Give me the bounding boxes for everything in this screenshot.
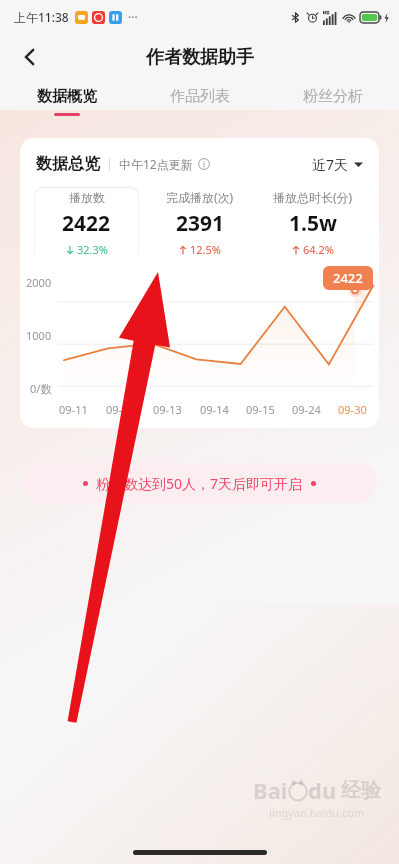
staticText: 09-11 xyxy=(59,402,88,417)
staticText: 64.2% xyxy=(303,242,334,257)
staticText: 粉丝分析 xyxy=(303,87,363,106)
button[interactable]: 近7天 xyxy=(312,155,363,174)
staticText: 2391 xyxy=(176,209,225,238)
staticText: 09-15 xyxy=(246,402,275,417)
staticText: 作品列表 xyxy=(170,87,230,106)
button[interactable]: 播放数 xyxy=(34,186,139,260)
staticText: 2422 xyxy=(62,209,111,238)
staticText: ··· xyxy=(128,9,138,25)
staticText: 32.3% xyxy=(77,242,108,257)
staticText: 上午11:38 xyxy=(14,9,69,25)
staticText: 数据总览 xyxy=(36,154,100,174)
staticText: 数据概览 xyxy=(37,87,97,106)
staticText: 2000 xyxy=(26,275,52,290)
staticText: 2422 xyxy=(333,269,363,287)
staticText: 0/数 xyxy=(30,381,52,396)
staticText: 09-14 xyxy=(200,402,229,417)
button[interactable]: 说明 xyxy=(198,158,210,170)
staticText: 近7天 xyxy=(312,155,349,174)
staticText: 播放数 xyxy=(69,190,105,205)
staticText: 09-13 xyxy=(153,402,182,417)
button[interactable]: 粉丝数达到50人，7天后即可开启 xyxy=(22,463,377,503)
staticText: 1000 xyxy=(26,328,52,343)
staticText: 中午12点更新 xyxy=(119,156,193,172)
staticText: 09-30 xyxy=(338,402,367,417)
staticText: du xyxy=(308,775,337,805)
button[interactable]: 返回 xyxy=(8,35,52,79)
button[interactable]: 完成播放(次) xyxy=(147,186,252,260)
staticText: 12.5% xyxy=(190,242,221,257)
button[interactable]: 粉丝分析 xyxy=(266,80,399,122)
staticText: 粉丝数达到50人，7天后即可开启 xyxy=(96,474,303,493)
staticText: Bai xyxy=(253,775,288,805)
button[interactable]: 作品列表 xyxy=(133,80,266,122)
staticText: 完成播放(次) xyxy=(166,189,234,205)
staticText: jingyan.baidu.com xyxy=(269,805,365,820)
button[interactable]: 数据概览 xyxy=(0,80,133,122)
staticText: 作者数据助手 xyxy=(146,46,254,69)
staticText: 09-24 xyxy=(292,402,321,417)
staticText: 09-12 xyxy=(106,402,135,417)
staticText: 1.5w xyxy=(289,209,337,238)
staticText: 播放总时长(分) xyxy=(273,189,353,205)
staticText: 经验 xyxy=(341,778,381,803)
button[interactable]: 播放总时长(分) xyxy=(260,186,365,260)
